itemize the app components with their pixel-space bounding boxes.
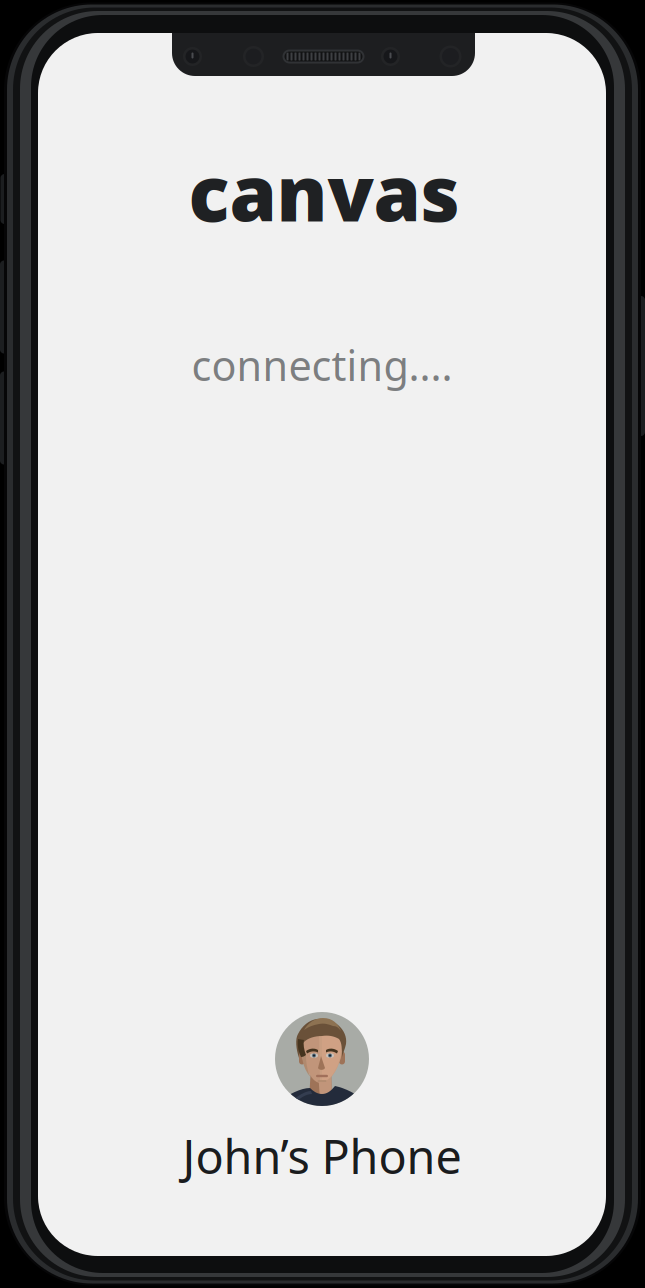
staticText: John’s Phone [182, 1125, 461, 1187]
staticText: connecting.... [191, 338, 452, 392]
staticText: canvas [188, 141, 459, 242]
button[interactable]: John’s Phone [162, 1012, 482, 1206]
